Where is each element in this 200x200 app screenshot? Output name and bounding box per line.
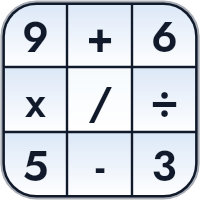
button[interactable]: + — [72, 7, 128, 63]
button[interactable]: x — [7, 72, 63, 128]
staticText: 3 — [151, 136, 177, 192]
button[interactable]: ÷ — [136, 72, 192, 128]
staticText: ÷ — [151, 72, 178, 128]
button[interactable]: 9 — [7, 7, 63, 63]
button[interactable]: 3 — [136, 136, 192, 192]
button[interactable]: 6 — [136, 7, 192, 63]
button[interactable]: / — [72, 72, 128, 128]
button[interactable]: 5 — [7, 136, 63, 192]
staticText: 6 — [151, 7, 178, 63]
staticText: 5 — [22, 136, 49, 192]
staticText: / — [88, 72, 113, 128]
button[interactable]: - — [72, 136, 128, 192]
staticText: + — [86, 7, 114, 63]
staticText: 9 — [22, 7, 49, 63]
staticText: - — [95, 136, 105, 192]
staticText: x — [25, 72, 46, 128]
